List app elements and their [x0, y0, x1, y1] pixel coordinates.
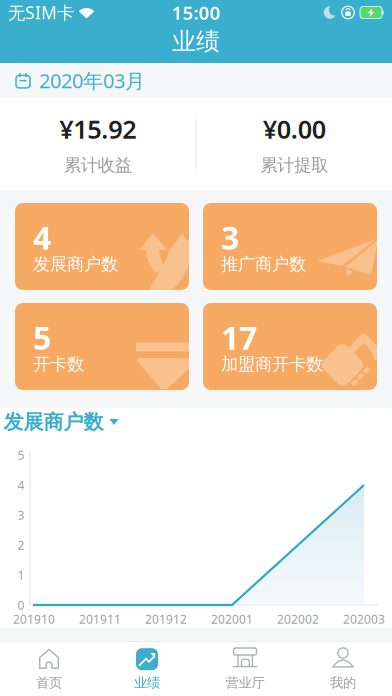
staticText: 推广商户数	[221, 253, 306, 275]
staticText: 业绩	[134, 675, 160, 691]
staticText: 5	[33, 316, 51, 358]
staticText: 202002	[277, 611, 319, 627]
staticText: 202003	[343, 611, 385, 627]
staticText: 201912	[145, 611, 187, 627]
staticText: 4	[17, 477, 24, 493]
button[interactable]: 3	[203, 203, 377, 290]
staticText: 营业厅	[225, 675, 264, 691]
staticText: 3	[17, 507, 24, 523]
staticText: 17	[221, 316, 257, 358]
button[interactable]: 4	[15, 203, 189, 290]
staticText: ¥15.92	[59, 112, 136, 146]
staticText: 我的	[330, 675, 356, 691]
staticText: 1	[17, 567, 24, 583]
staticText: 15:00	[171, 0, 220, 25]
staticText: 201911	[79, 611, 121, 627]
staticText: ¥0.00	[263, 112, 326, 146]
staticText: 累计收益	[64, 155, 132, 176]
button[interactable]: 首页	[0, 642, 98, 696]
staticText: 发展商户数	[3, 410, 103, 434]
staticText: 无SIM卡	[8, 1, 74, 24]
staticText: 4	[33, 216, 51, 258]
staticText: 累计提取	[260, 155, 328, 176]
staticText: 业绩	[172, 27, 220, 56]
staticText: 201910	[13, 611, 55, 627]
staticText: 2	[17, 537, 24, 553]
button[interactable]: 5	[15, 303, 189, 390]
button[interactable]: 17	[203, 303, 377, 390]
staticText: 202001	[211, 611, 253, 627]
button[interactable]: 我的	[294, 642, 392, 696]
button[interactable]: 营业厅	[196, 642, 294, 696]
staticText: 加盟商开卡数	[221, 353, 323, 375]
button[interactable]: 业绩	[98, 642, 196, 696]
button[interactable]: 2020年03月	[0, 63, 392, 98]
staticText: 0	[17, 597, 24, 613]
staticText: 首页	[36, 675, 62, 691]
staticText: 开卡数	[33, 353, 84, 375]
staticText: 2020年03月	[39, 67, 145, 94]
staticText: 5	[17, 447, 24, 463]
staticText: 3	[221, 216, 239, 258]
button[interactable]: 发展商户数	[3, 410, 118, 434]
staticText: 发展商户数	[33, 253, 118, 275]
